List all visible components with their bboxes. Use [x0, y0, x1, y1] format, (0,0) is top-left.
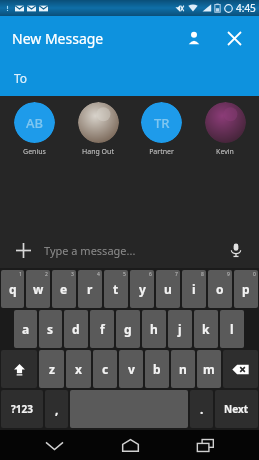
- staticText: u: [164, 281, 172, 297]
- staticText: AB: [26, 114, 44, 132]
- staticText: 4: [97, 271, 100, 278]
- staticText: a: [22, 321, 30, 337]
- button[interactable]: m: [197, 350, 221, 388]
- button[interactable]: Shift: [1, 350, 37, 388]
- staticText: n: [179, 361, 187, 377]
- button[interactable]: Close: [217, 21, 251, 55]
- button[interactable]: To: [0, 60, 259, 96]
- staticText: t: [113, 281, 119, 297]
- button[interactable]: c: [93, 350, 117, 388]
- staticText: v: [128, 361, 135, 377]
- button[interactable]: TR: [131, 96, 191, 157]
- staticText: i: [192, 281, 196, 297]
- button[interactable]: s: [39, 310, 62, 348]
- button[interactable]: r: [78, 270, 102, 308]
- staticText: New Message: [12, 29, 104, 48]
- staticText: .: [200, 401, 204, 417]
- staticText: s: [47, 321, 54, 337]
- button[interactable]: ,: [45, 390, 68, 428]
- staticText: d: [72, 321, 80, 337]
- button[interactable]: a: [14, 310, 37, 348]
- staticText: Type a message...: [44, 243, 136, 258]
- button[interactable]: z: [39, 350, 64, 388]
- button[interactable]: l: [220, 310, 244, 348]
- staticText: m: [203, 361, 215, 377]
- staticText: Next: [224, 402, 249, 416]
- button[interactable]: h: [142, 310, 166, 348]
- staticText: 9: [227, 271, 230, 278]
- button[interactable]: AB: [4, 96, 64, 157]
- button[interactable]: q: [1, 270, 24, 308]
- button[interactable]: Type a message...: [44, 243, 223, 258]
- button[interactable]: y: [130, 270, 154, 308]
- button[interactable]: u: [156, 270, 180, 308]
- button[interactable]: p: [234, 270, 258, 308]
- staticText: Partner: [149, 147, 174, 157]
- staticText: 1: [19, 271, 22, 278]
- staticText: TR: [154, 114, 170, 132]
- staticText: 8: [201, 271, 204, 278]
- button[interactable]: Kevin: [195, 96, 255, 157]
- button[interactable]: Attach: [10, 237, 36, 263]
- staticText: f: [100, 321, 105, 337]
- staticText: Hang Out: [82, 147, 114, 157]
- button[interactable]: i: [182, 270, 206, 308]
- staticText: c: [102, 361, 109, 377]
- staticText: 4:45: [236, 1, 256, 15]
- button[interactable]: Hang Out: [68, 96, 128, 157]
- staticText: p: [242, 281, 250, 297]
- staticText: To: [14, 70, 28, 86]
- button[interactable]: g: [116, 310, 140, 348]
- staticText: ,: [55, 401, 59, 417]
- staticText: 2: [45, 271, 48, 278]
- staticText: 5: [123, 271, 126, 278]
- staticText: b: [153, 361, 161, 377]
- staticText: Kevin: [216, 147, 234, 157]
- button[interactable]: d: [64, 310, 88, 348]
- staticText: y: [139, 281, 146, 297]
- button[interactable]: f: [90, 310, 114, 348]
- button[interactable]: Back: [32, 430, 76, 460]
- button[interactable]: x: [66, 350, 91, 388]
- staticText: 0: [253, 271, 256, 278]
- button[interactable]: k: [194, 310, 218, 348]
- staticText: 7: [175, 271, 178, 278]
- button[interactable]: j: [168, 310, 192, 348]
- button[interactable]: Add contact: [177, 21, 211, 55]
- staticText: k: [202, 321, 210, 337]
- staticText: 3: [71, 271, 74, 278]
- button[interactable]: w: [26, 270, 50, 308]
- button[interactable]: e: [52, 270, 76, 308]
- button[interactable]: b: [145, 350, 169, 388]
- button[interactable]: Home: [108, 430, 152, 460]
- staticText: ?123: [11, 402, 33, 416]
- staticText: g: [124, 321, 132, 337]
- button[interactable]: Delete: [223, 350, 258, 388]
- button[interactable]: Recent apps: [183, 430, 227, 460]
- staticText: h: [150, 321, 158, 337]
- staticText: Genius: [23, 147, 46, 157]
- staticText: z: [49, 361, 55, 377]
- button[interactable]: o: [208, 270, 232, 308]
- staticText: w: [33, 281, 44, 297]
- staticText: e: [60, 281, 68, 297]
- staticText: o: [216, 281, 224, 297]
- button[interactable]: n: [171, 350, 195, 388]
- button[interactable]: v: [119, 350, 143, 388]
- staticText: j: [178, 321, 182, 337]
- staticText: q: [9, 281, 17, 297]
- staticText: 6: [149, 271, 152, 278]
- staticText: x: [75, 361, 82, 377]
- button[interactable]: Next: [215, 390, 258, 428]
- staticText: r: [87, 281, 93, 297]
- button[interactable]: Voice input: [223, 237, 249, 263]
- button[interactable]: ?123: [1, 390, 43, 428]
- staticText: l: [230, 321, 234, 337]
- button[interactable]: t: [104, 270, 128, 308]
- button[interactable]: .: [190, 390, 213, 428]
